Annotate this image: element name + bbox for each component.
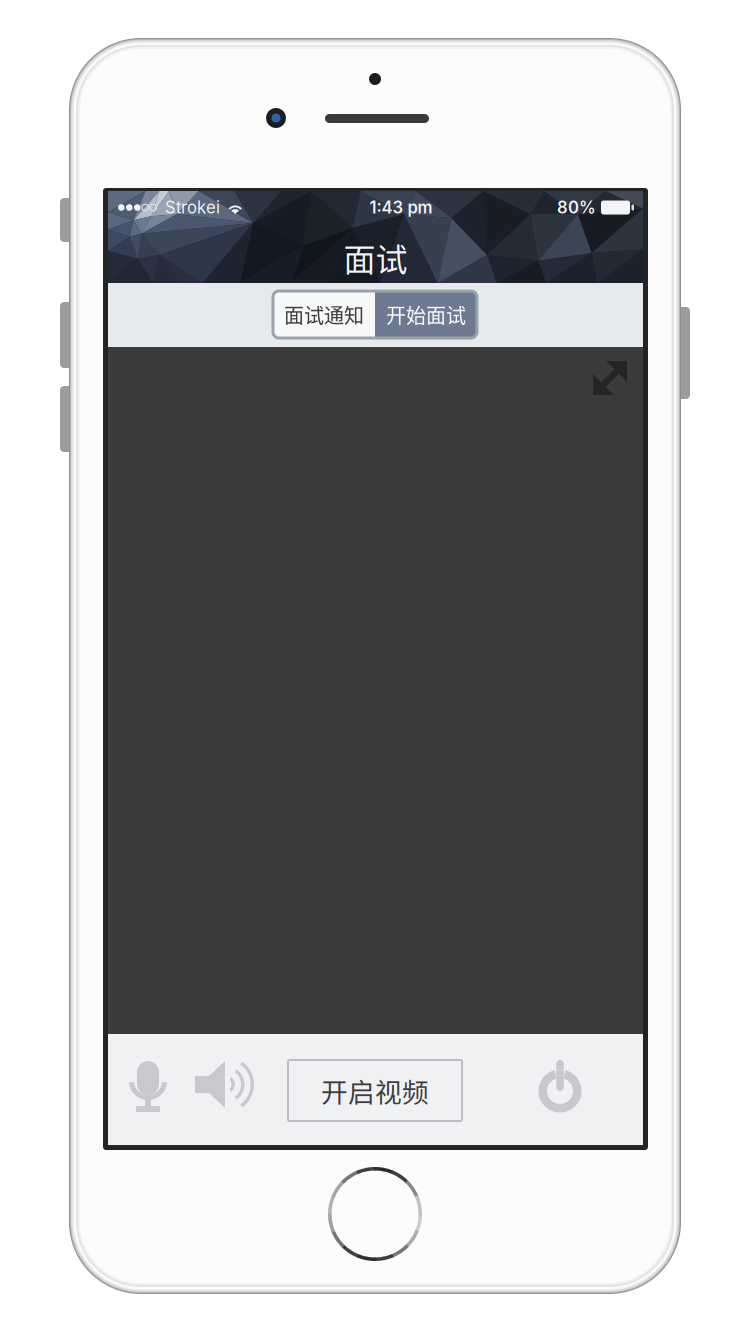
button[interactable]: End call <box>532 1056 588 1118</box>
button[interactable]: 开始面试 <box>375 291 477 338</box>
staticText: 面试 <box>343 234 407 281</box>
button[interactable]: Enter full screen <box>592 360 628 396</box>
staticText: Strokei <box>165 197 220 218</box>
button[interactable]: Mute microphone <box>120 1056 176 1118</box>
staticText: 开始面试 <box>386 300 466 329</box>
staticText: 开启视频 <box>321 1071 429 1110</box>
staticText: 80% <box>557 197 596 218</box>
staticText: 面试通知 <box>284 300 364 329</box>
button[interactable]: 开启视频 <box>288 1060 462 1121</box>
button[interactable]: 面试通知 <box>273 291 375 338</box>
staticText: 1:43 pm <box>369 197 432 218</box>
button[interactable]: Speaker <box>193 1056 259 1118</box>
